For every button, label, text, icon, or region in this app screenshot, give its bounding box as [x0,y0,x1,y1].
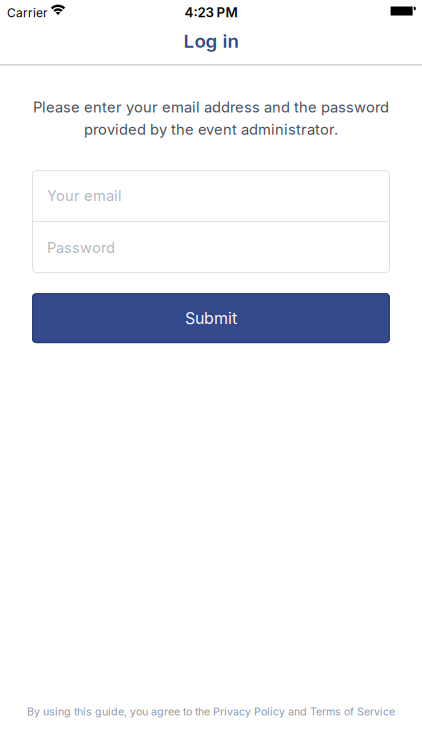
staticText: Privacy Policy [213,705,285,718]
staticText: Password [47,239,115,256]
button[interactable]: Password [32,222,390,273]
staticText: Your email [47,187,122,204]
staticText: and [285,705,310,718]
staticText: Terms of Service [310,705,395,718]
staticText: Please enter your email address and the … [33,98,389,116]
button[interactable]: Privacy Policy [213,705,285,718]
staticText: Carrier [7,6,48,20]
button[interactable]: Terms of Service [310,705,395,718]
button[interactable]: Your email [32,170,390,221]
staticText: Log in [183,30,238,52]
staticText: provided by the event administrator. [84,121,338,138]
button[interactable]: Submit [32,293,390,343]
staticText: Submit [185,309,237,328]
staticText: 4:23 PM [184,5,237,20]
staticText: By using this guide, you agree to the [27,705,213,718]
